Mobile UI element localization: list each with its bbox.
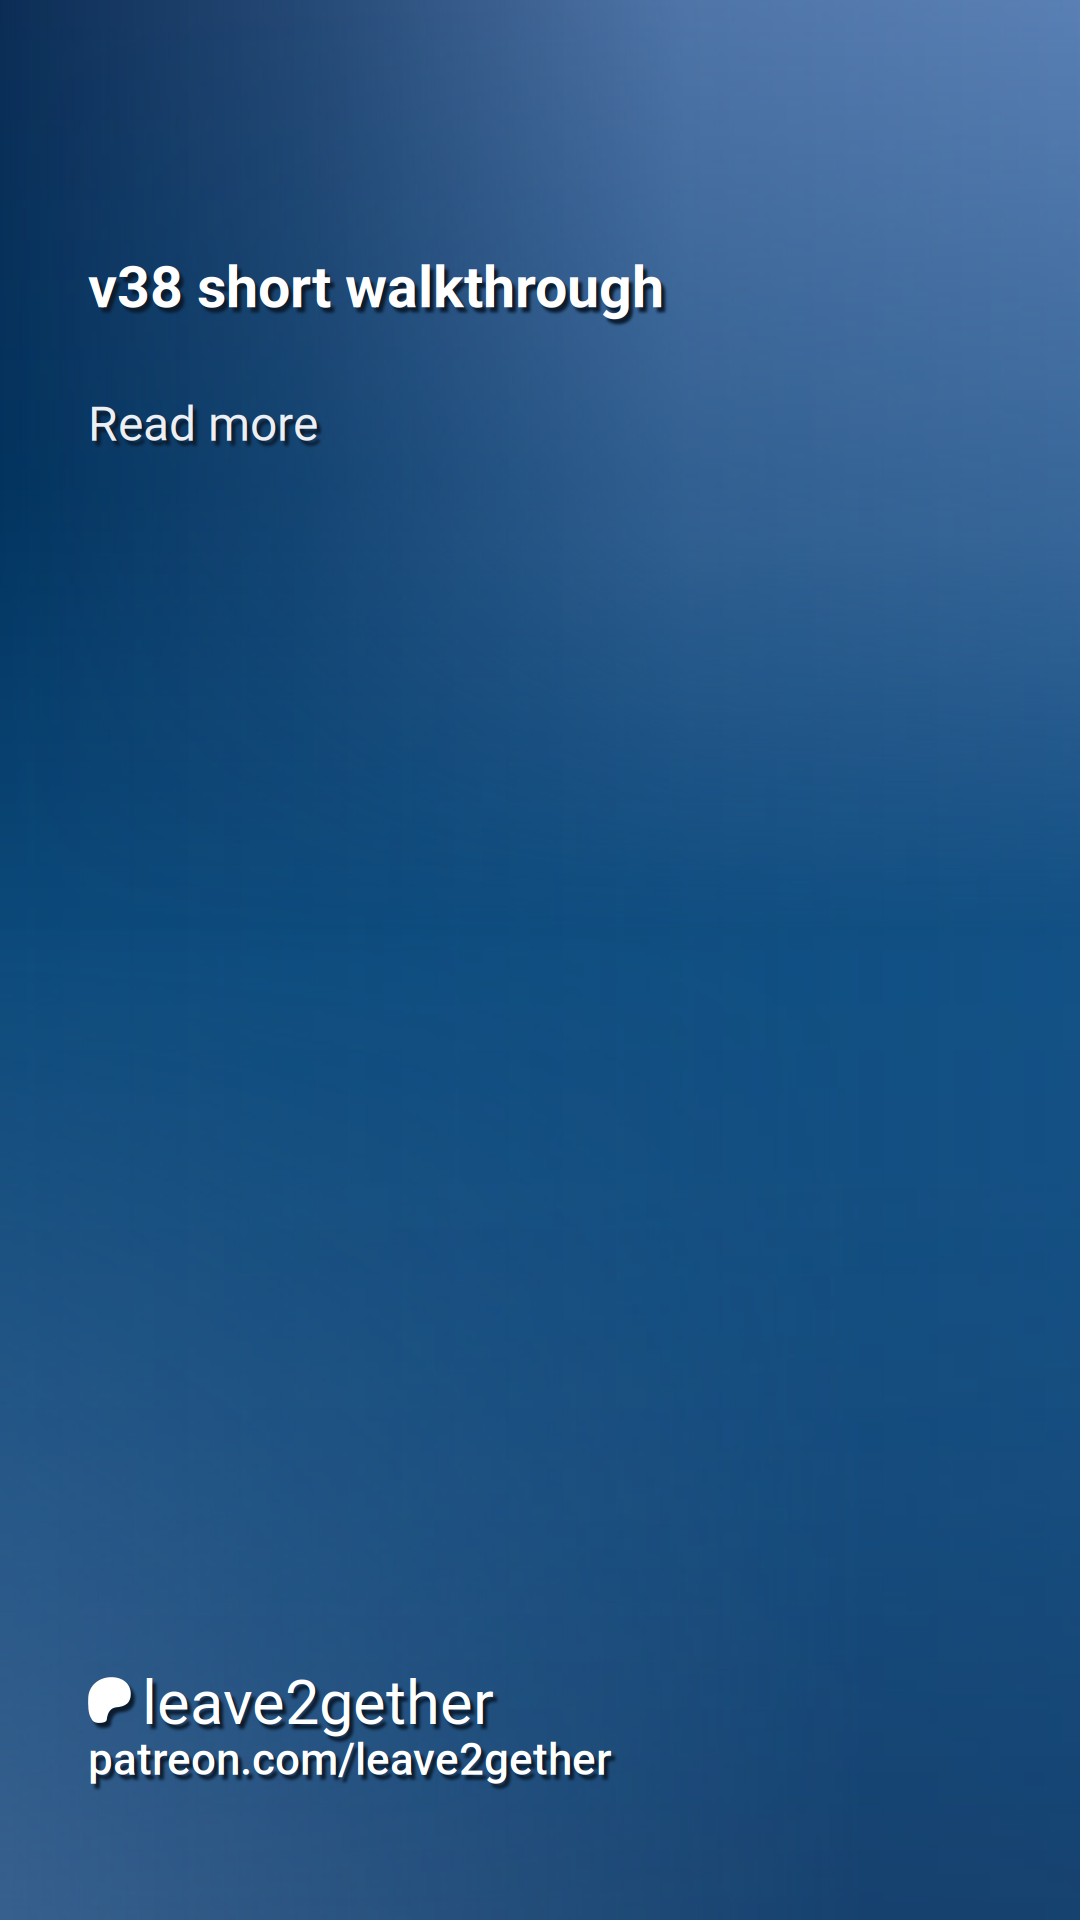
button[interactable]: Read more <box>88 396 318 452</box>
staticText: leave2gether <box>142 1667 494 1739</box>
staticText: v38 short walkthrough <box>88 254 664 321</box>
staticText: patreon.com/leave2gether <box>88 1734 612 1785</box>
staticText: Read more <box>88 396 318 452</box>
button[interactable]: leave2gether <box>88 1667 612 1785</box>
